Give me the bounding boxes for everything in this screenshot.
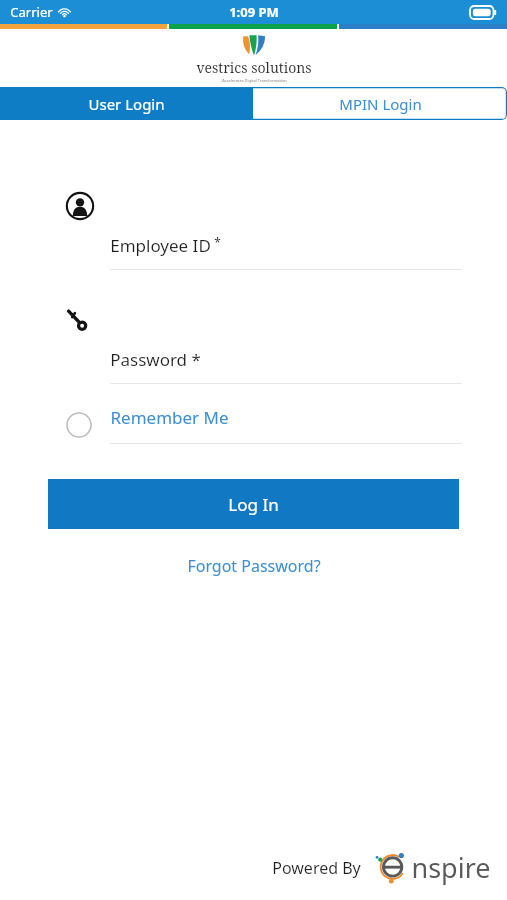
other: enspire <box>377 851 411 885</box>
staticText: Accelerates Digital Transformation <box>222 78 287 83</box>
other: Password <box>66 308 92 334</box>
staticText: * <box>211 234 221 250</box>
button[interactable]: Forgot Password? <box>181 549 327 583</box>
staticText: Forgot Password? <box>187 555 321 577</box>
other: Employee ID <box>66 192 94 220</box>
staticText: Password * <box>110 348 201 371</box>
button[interactable]: MPIN Login <box>253 87 507 120</box>
button[interactable]: User Login <box>0 87 253 120</box>
staticText: User Login <box>88 94 165 114</box>
staticText: Log In <box>228 493 279 516</box>
staticText: Remember Me <box>110 406 229 429</box>
staticText: Carrier <box>10 3 53 21</box>
button[interactable]: Log In <box>48 479 459 529</box>
staticText: Powered By <box>272 857 361 879</box>
staticText: nspire <box>411 849 491 886</box>
staticText: Employee ID <box>110 234 211 257</box>
button[interactable]: Password * <box>110 348 462 384</box>
button[interactable]: Remember Me <box>66 406 462 444</box>
button[interactable]: Employee ID <box>110 234 462 270</box>
staticText: 1:09 PM <box>229 3 279 21</box>
staticText: vestrics solutions <box>196 58 312 77</box>
staticText: MPIN Login <box>339 94 422 114</box>
